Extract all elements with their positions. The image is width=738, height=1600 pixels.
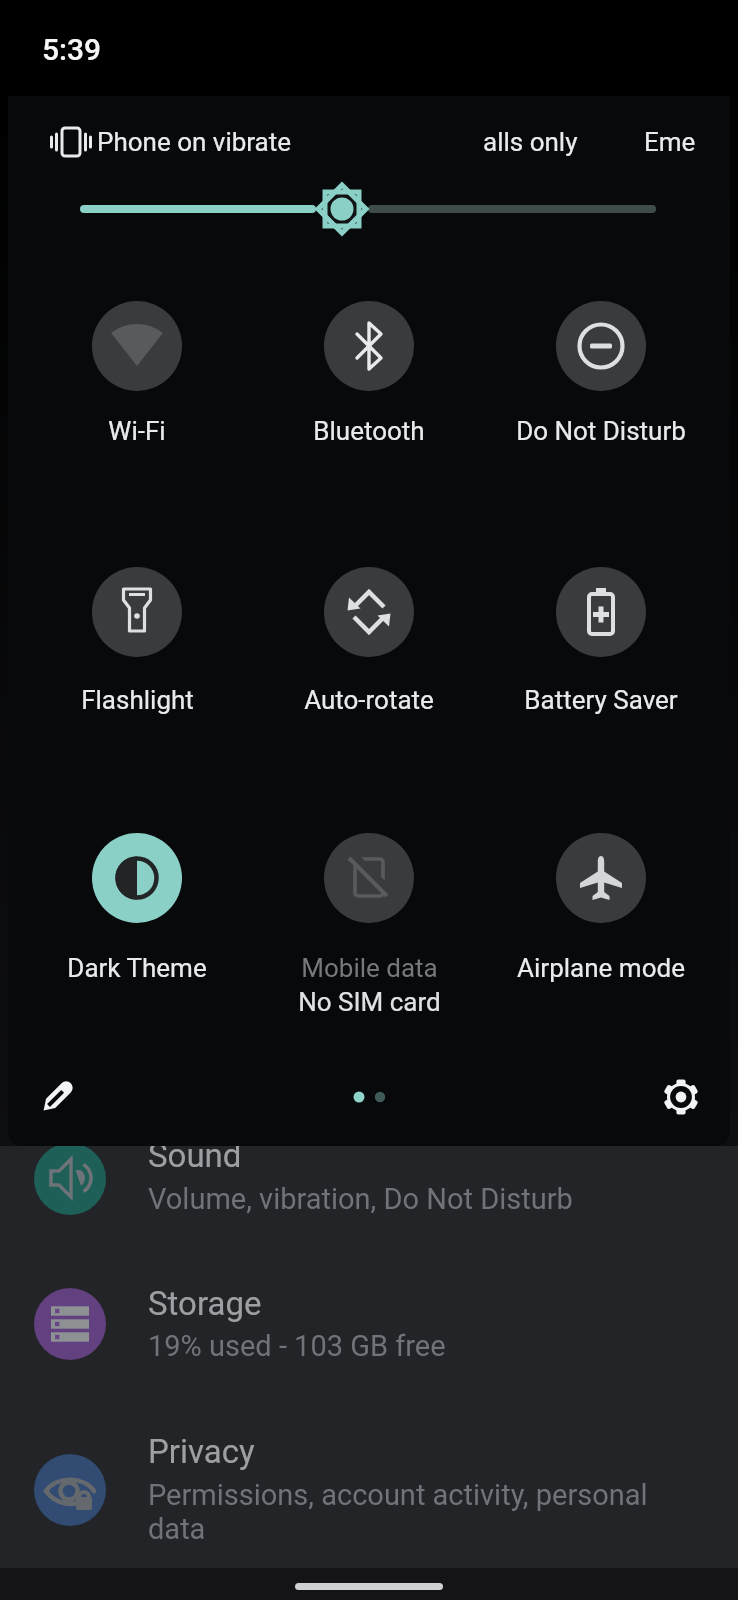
staticText: Auto-rotate bbox=[304, 685, 434, 715]
button[interactable] bbox=[295, 1583, 443, 1590]
staticText: Flashlight bbox=[81, 685, 194, 715]
button[interactable] bbox=[34, 1143, 106, 1215]
button[interactable] bbox=[92, 833, 182, 923]
staticText: Phone on vibrate bbox=[97, 127, 292, 157]
staticText: Wi-Fi bbox=[108, 416, 166, 446]
button[interactable] bbox=[324, 301, 414, 391]
staticText: 5:39 bbox=[42, 32, 102, 67]
staticText: Battery Saver bbox=[524, 685, 678, 715]
staticText: Sound bbox=[148, 1136, 242, 1175]
staticText: Volume, vibration, Do Not Disturb bbox=[148, 1182, 573, 1216]
button[interactable] bbox=[324, 833, 414, 923]
staticText: Do Not Disturb bbox=[516, 416, 686, 446]
button[interactable] bbox=[34, 1454, 106, 1526]
staticText: No SIM card bbox=[298, 987, 441, 1017]
staticText: Eme bbox=[644, 127, 696, 157]
staticText: Permissions, account activity, personal … bbox=[148, 1478, 648, 1546]
staticText: Dark Theme bbox=[67, 953, 207, 983]
staticText: Storage bbox=[148, 1284, 262, 1323]
button[interactable] bbox=[324, 567, 414, 657]
button[interactable] bbox=[34, 1288, 106, 1360]
button[interactable] bbox=[556, 833, 646, 923]
staticText: Bluetooth bbox=[313, 416, 425, 446]
staticText: Airplane mode bbox=[517, 953, 685, 983]
staticText: 19% used - 103 GB free bbox=[148, 1329, 446, 1363]
staticText: alls only bbox=[483, 127, 578, 157]
staticText: Mobile data bbox=[301, 953, 438, 983]
button[interactable] bbox=[654, 1070, 708, 1124]
button[interactable] bbox=[92, 301, 182, 391]
button[interactable] bbox=[556, 301, 646, 391]
button[interactable] bbox=[556, 567, 646, 657]
button[interactable] bbox=[30, 1070, 84, 1124]
staticText: Privacy bbox=[148, 1432, 255, 1471]
button[interactable] bbox=[92, 567, 182, 657]
